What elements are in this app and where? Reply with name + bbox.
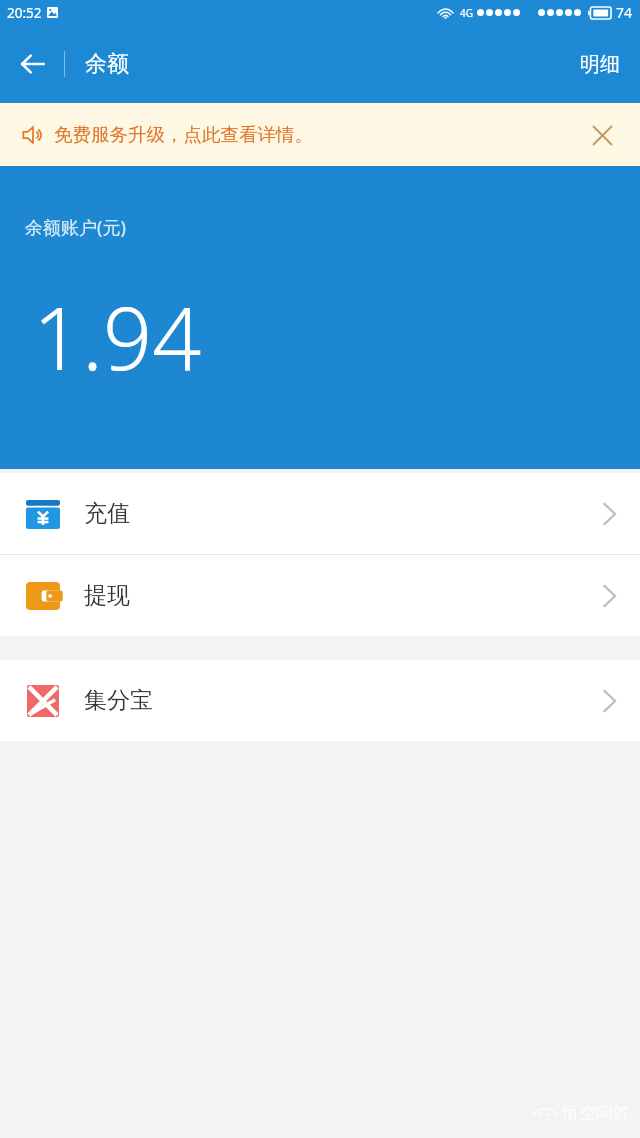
staticText: 充值 [84,499,130,528]
staticText: 4G [460,6,473,20]
staticText: 免费服务升级，点此查看详情。 [54,123,313,146]
staticText: 74 [616,3,633,22]
staticText: 20:52 [7,4,42,22]
button[interactable]: 集分宝 [0,660,640,741]
staticText: 悟空问答 [562,1103,630,1124]
staticText: 集分宝 [84,686,153,715]
button[interactable]: 返回 [0,32,64,96]
button[interactable]: 提现 [0,555,640,636]
button[interactable]: 免费服务升级，点此查看详情。 [0,103,640,166]
button[interactable]: 充值 [0,473,640,554]
staticText: 余额 [85,50,129,78]
staticText: 明细 [580,52,620,77]
staticText: 1.94 [33,278,202,395]
staticText: 余额账户(元) [25,215,126,240]
staticText: 提现 [84,581,130,610]
button[interactable]: 明细 [560,25,640,103]
button[interactable]: 关闭 [582,115,622,155]
